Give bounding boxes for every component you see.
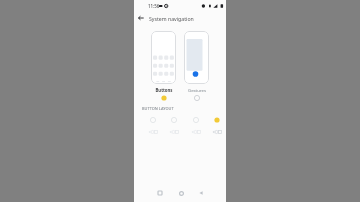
staticText: BUTTON LAYOUT [142, 106, 174, 111]
staticText: Gestures [188, 87, 206, 93]
button[interactable]: Recent apps [155, 188, 165, 198]
button[interactable]: Select option [159, 93, 168, 102]
button[interactable]: Back [196, 188, 206, 198]
button[interactable] [151, 31, 176, 84]
button[interactable]: Select option [212, 115, 221, 124]
staticText: 11:56 [148, 3, 160, 9]
staticText: System navigation [149, 15, 194, 22]
button[interactable]: Button layout 3 [189, 128, 201, 136]
button[interactable]: Button layout 1 [146, 128, 158, 136]
button[interactable]: Home [176, 188, 186, 198]
button[interactable]: Select option [192, 93, 201, 102]
button[interactable]: Select option [191, 115, 200, 124]
button[interactable]: Select option [169, 115, 178, 124]
button[interactable] [184, 31, 209, 84]
staticText: Buttons [155, 87, 173, 93]
button[interactable]: Back [136, 13, 146, 23]
button[interactable]: Button layout 2 [167, 128, 179, 136]
button[interactable]: Button layout 4 [210, 128, 222, 136]
button[interactable]: Select option [148, 115, 157, 124]
